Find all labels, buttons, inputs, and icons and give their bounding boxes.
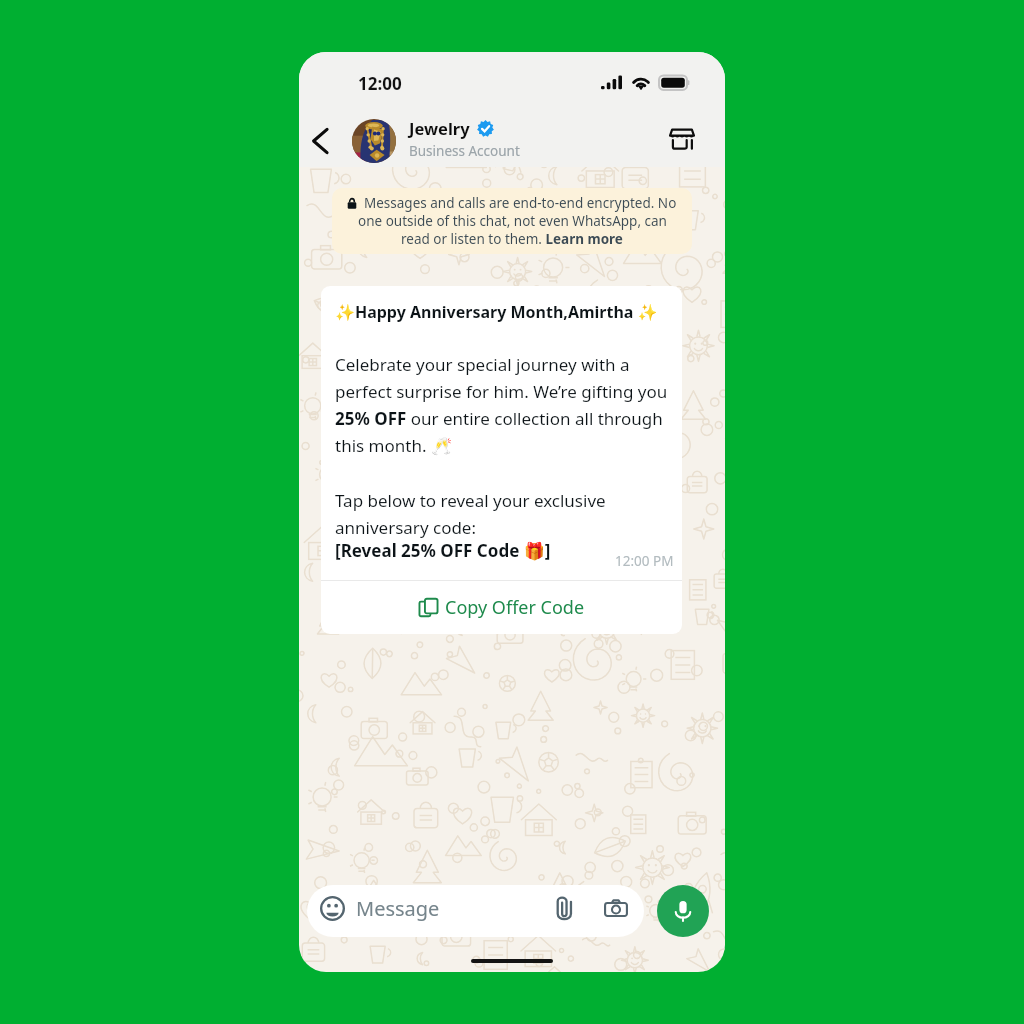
button[interactable]: Camera (602, 895, 630, 923)
staticText: Message (356, 895, 440, 922)
staticText: 12:00 PM (615, 552, 674, 570)
button[interactable]: Voice message (657, 885, 709, 937)
button[interactable]: Copy Offer Code (321, 581, 682, 634)
staticText: ✨Happy Anniversary Month,Amirtha ✨ (335, 301, 658, 323)
staticText: Jewelry (409, 117, 470, 139)
button[interactable]: Back (305, 126, 335, 156)
staticText: Messages and calls are end-to-end encryp… (364, 194, 677, 212)
button[interactable]: Business catalog (665, 124, 699, 150)
button[interactable]: Attach (550, 895, 578, 923)
staticText: one outside of this chat, not even Whats… (358, 212, 667, 230)
staticText: Celebrate your special journey with a pe… (335, 353, 668, 457)
staticText: Tap below to reveal your exclusive anniv… (335, 489, 668, 539)
staticText: 12:00 (358, 72, 402, 95)
staticText: Business Account (409, 142, 520, 160)
staticText: read or listen to them. Learn more (401, 230, 623, 248)
staticText: [Reveal 25% OFF Code 🎁] (335, 539, 551, 562)
button[interactable]: Profile photo (352, 119, 396, 163)
button[interactable]: Message (307, 885, 644, 937)
button[interactable]: Messages and calls are end-to-end encryp… (332, 188, 692, 254)
staticText: Copy Offer Code (445, 595, 585, 620)
